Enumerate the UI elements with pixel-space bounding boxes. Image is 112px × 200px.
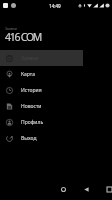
- staticText: История: [21, 87, 42, 94]
- staticText: Карта: [21, 71, 35, 78]
- staticText: Новости: [21, 103, 42, 110]
- button[interactable]: Recents: [99, 179, 112, 199]
- button[interactable]: Профиль: [0, 114, 83, 130]
- staticText: 14:49: [49, 3, 61, 9]
- staticText: Заявки: [5, 26, 17, 30]
- button[interactable]: Back: [76, 179, 96, 199]
- button[interactable]: Новости: [0, 98, 83, 114]
- button[interactable]: Home: [53, 179, 73, 199]
- staticText: Заявки: [21, 55, 39, 62]
- button[interactable]: Выход: [0, 130, 83, 146]
- staticText: 416 COM: [5, 30, 42, 44]
- button[interactable]: Карта: [0, 66, 83, 82]
- button[interactable]: История: [0, 82, 83, 98]
- staticText: Выход: [21, 135, 37, 142]
- staticText: Профиль: [21, 119, 44, 126]
